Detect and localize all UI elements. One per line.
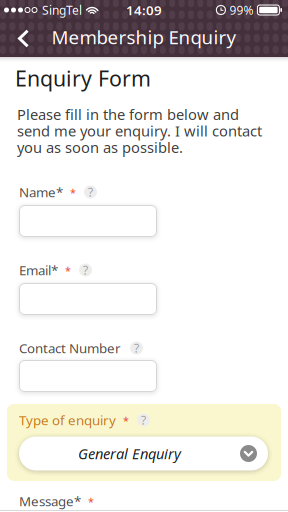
button[interactable]: Text field <box>19 360 157 392</box>
staticText: Type of enquiry <box>19 411 116 429</box>
staticText: ? <box>83 262 88 278</box>
staticText: * <box>65 263 71 278</box>
staticText: General Enquiry <box>78 444 181 463</box>
button[interactable]: General Enquiry <box>19 436 268 470</box>
staticText: Please fill in the form below and send m… <box>17 104 262 157</box>
staticText: Enquiry Form <box>15 64 151 92</box>
button[interactable]: Back <box>0 20 41 57</box>
staticText: ? <box>141 412 146 428</box>
staticText: * <box>88 494 94 509</box>
button[interactable]: Help <box>137 413 150 426</box>
staticText: Name* <box>19 183 63 201</box>
staticText: 14:09 <box>126 1 162 19</box>
button[interactable]: Text field <box>19 283 157 315</box>
staticText: ? <box>88 184 93 200</box>
staticText: ? <box>134 340 139 356</box>
button[interactable]: Help <box>130 341 143 354</box>
button[interactable]: Text field <box>19 205 157 237</box>
button[interactable]: Help <box>79 263 92 276</box>
button[interactable]: Help <box>84 185 97 198</box>
staticText: SingTel <box>42 2 82 18</box>
staticText: Message* <box>19 492 81 510</box>
staticText: Contact Number <box>19 339 121 357</box>
staticText: 99% <box>229 2 253 18</box>
staticText: Membership Enquiry <box>51 25 236 49</box>
staticText: * <box>70 185 76 200</box>
staticText: Email* <box>19 261 58 279</box>
staticText: * <box>123 413 129 428</box>
